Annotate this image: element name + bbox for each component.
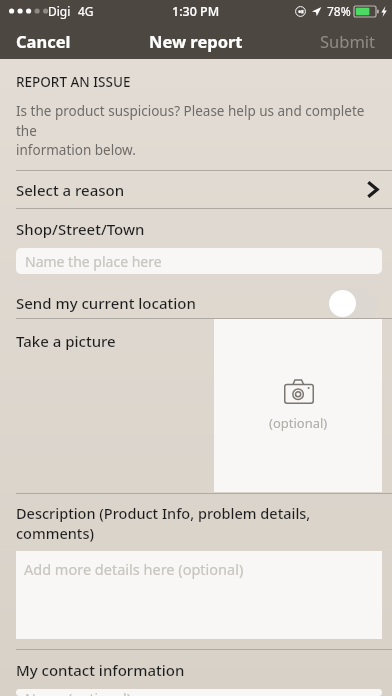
- staticText: New report: [149, 30, 243, 52]
- button[interactable]: Take a picture: [214, 319, 382, 492]
- button[interactable]: Name (optional): [16, 689, 382, 696]
- staticText: Description (Product Info, problem detai…: [16, 503, 392, 543]
- button[interactable]: Name the place here: [16, 248, 382, 274]
- staticText: Add more details here (optional): [24, 559, 244, 579]
- staticText: REPORT AN ISSUE: [16, 73, 131, 91]
- staticText: Select a reason: [16, 180, 125, 200]
- button[interactable]: Send my current location toggle: [327, 288, 378, 318]
- button[interactable]: Send my current location: [0, 288, 392, 318]
- staticText: My contact information: [16, 660, 185, 680]
- staticText: Is the product suspicious? Please help u…: [16, 102, 378, 159]
- staticText: Digi: [48, 3, 71, 19]
- staticText: Submit: [320, 30, 376, 52]
- staticText: Cancel: [16, 30, 71, 52]
- staticText: Shop/Street/Town: [16, 219, 145, 239]
- staticText: (optional): [269, 414, 328, 432]
- staticText: Take a picture: [16, 331, 116, 351]
- staticText: 1:30 PM: [172, 3, 220, 20]
- button[interactable]: Add more details here (optional): [16, 551, 382, 639]
- staticText: Send my current location: [16, 293, 196, 313]
- button[interactable]: Select a reason: [0, 171, 392, 208]
- staticText: Name the place here: [25, 252, 162, 271]
- button[interactable]: Cancel: [0, 24, 87, 58]
- button[interactable]: Submit: [304, 24, 392, 58]
- staticText: 4G: [78, 3, 94, 19]
- staticText: Name (optional): [25, 689, 131, 696]
- staticText: 78%: [327, 3, 351, 19]
